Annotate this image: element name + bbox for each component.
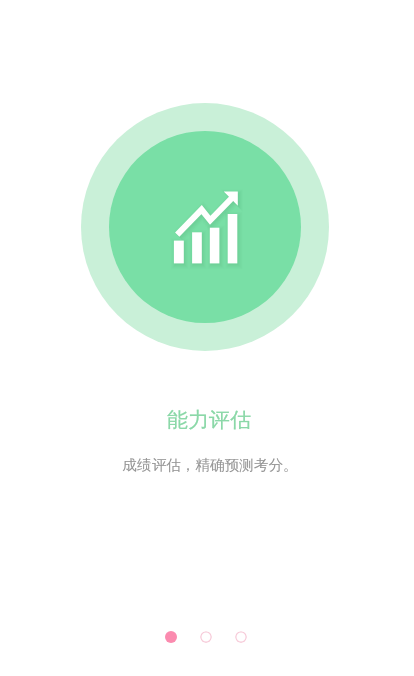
staticText: 能力评估 — [167, 407, 251, 433]
button[interactable]: Page 2 — [200, 631, 212, 643]
button[interactable]: Page 1 — [165, 631, 177, 643]
button[interactable]: Ability assessment illustration — [81, 103, 329, 351]
staticText: 成绩评估，精确预测考分。 — [122, 456, 298, 474]
button[interactable]: Page 3 — [235, 631, 247, 643]
